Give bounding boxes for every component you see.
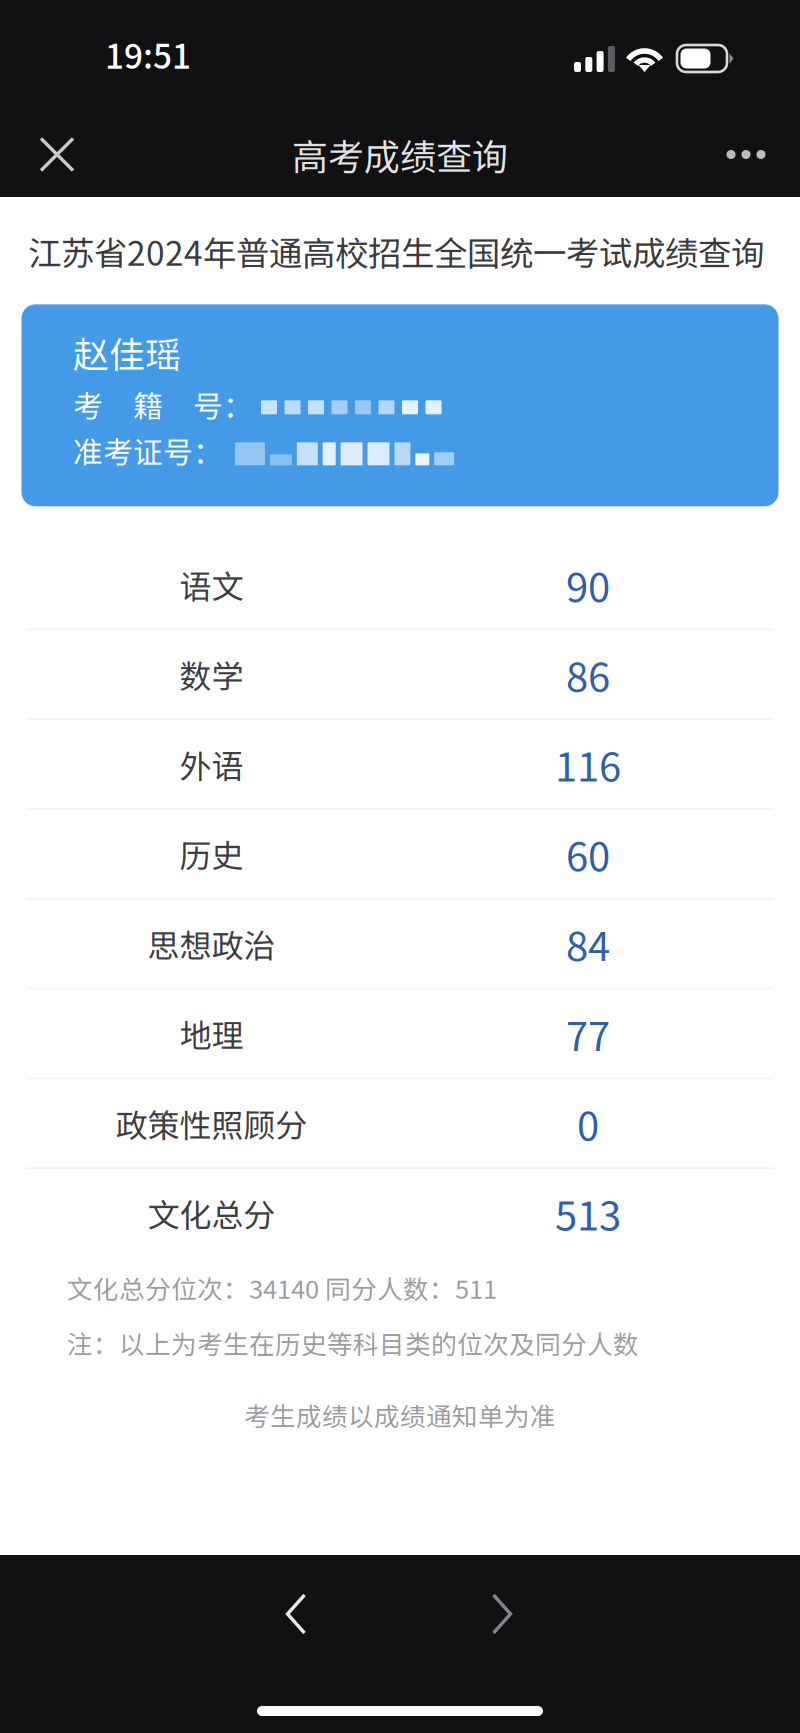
button[interactable]: More options: [710, 118, 782, 190]
staticText: 86: [566, 645, 610, 703]
staticText: 60: [566, 825, 610, 883]
staticText: 注：以上为考生在历史等科目类的位次及同分人数: [67, 1324, 639, 1361]
staticText: 高考成绩查询: [292, 128, 508, 180]
button[interactable]: Forward: [454, 1575, 550, 1653]
staticText: 数学: [179, 651, 243, 697]
staticText: 地理: [179, 1010, 243, 1057]
staticText: 赵佳瑶: [73, 326, 181, 378]
staticText: 19:51: [105, 30, 191, 78]
staticText: 文化总分位次：34140 同分人数：511: [67, 1269, 497, 1306]
staticText: 外语: [179, 741, 243, 787]
button[interactable]: Close: [21, 118, 93, 190]
staticText: 考生成绩以成绩通知单为准: [244, 1396, 556, 1433]
staticText: 90: [566, 555, 610, 613]
staticText: 政策性照顾分: [115, 1100, 307, 1146]
staticText: 考 籍 号：: [73, 383, 253, 426]
staticText: 语文: [179, 561, 243, 608]
staticText: 513: [555, 1184, 621, 1242]
staticText: 116: [555, 735, 621, 793]
staticText: 77: [566, 1004, 610, 1062]
button[interactable]: Back: [248, 1575, 344, 1653]
staticText: 0: [577, 1094, 599, 1152]
staticText: 思想政治: [147, 920, 275, 967]
staticText: 历史: [179, 831, 243, 877]
staticText: 文化总分: [147, 1190, 275, 1236]
staticText: 准考证号：: [73, 429, 223, 472]
staticText: 84: [566, 915, 610, 973]
staticText: 江苏省2024年普通高校招生全国统一考试成绩查询: [28, 227, 764, 275]
